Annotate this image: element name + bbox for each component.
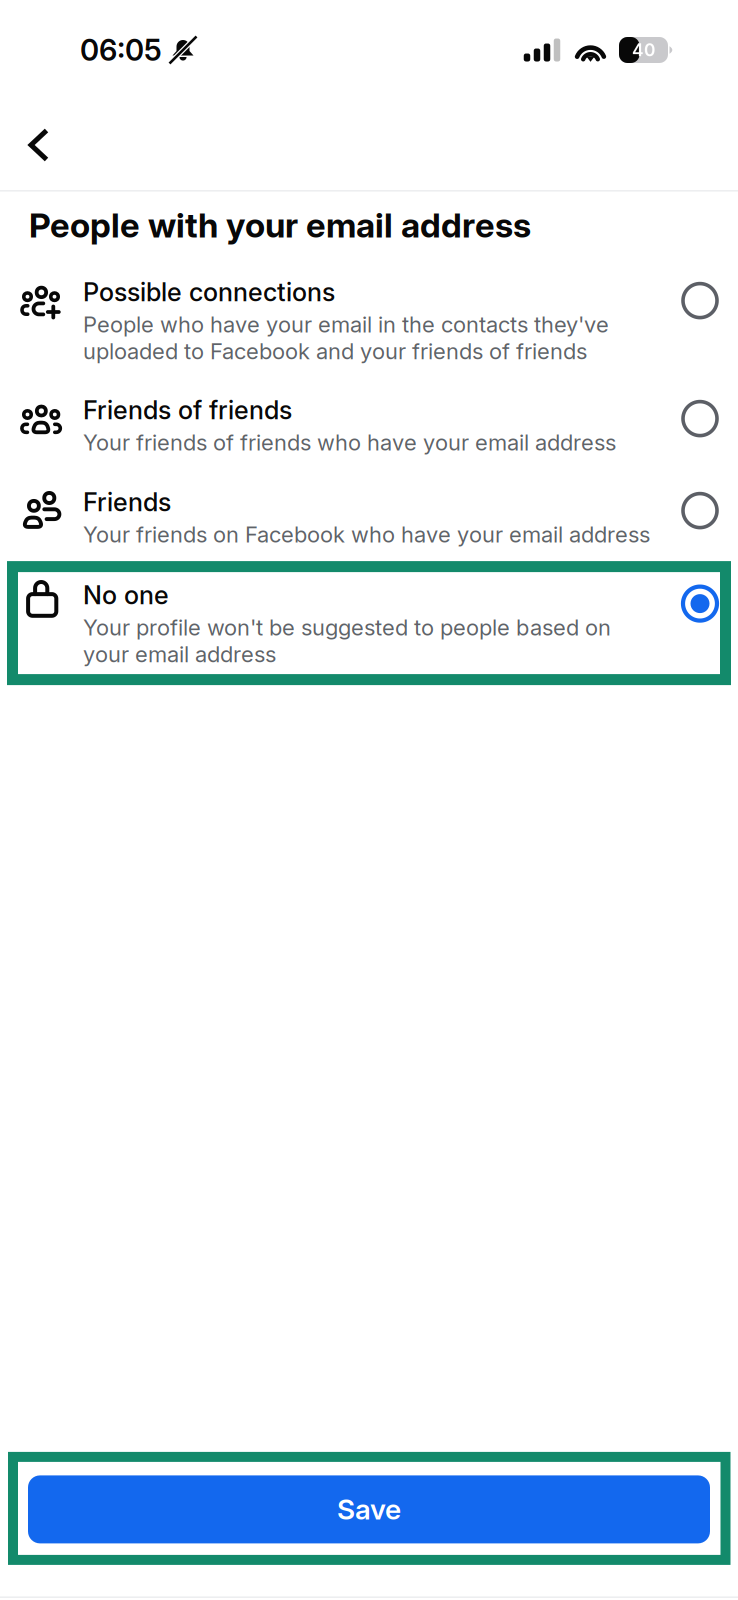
staticText: 40	[632, 39, 655, 60]
staticText: Save	[337, 1492, 401, 1526]
button[interactable]: Save	[28, 1475, 710, 1543]
button[interactable]: No one	[0, 562, 738, 684]
staticText: Friends	[83, 487, 171, 517]
staticText: Your profile won't be suggested to peopl…	[83, 614, 611, 667]
staticText: No one	[83, 580, 169, 610]
button[interactable]: Possible connections	[0, 259, 738, 377]
staticText: Possible connections	[83, 277, 335, 307]
staticText: Your friends on Facebook who have your e…	[83, 521, 650, 548]
button[interactable]: Friends	[0, 469, 738, 562]
staticText: People who have your email in the contac…	[83, 311, 609, 364]
staticText: 06:05	[80, 32, 162, 68]
staticText: Your friends of friends who have your em…	[83, 429, 616, 456]
staticText: People with your email address	[29, 204, 531, 246]
button[interactable]: Friends of friends	[0, 377, 738, 469]
staticText: Friends of friends	[83, 395, 292, 425]
button[interactable]: Back	[0, 100, 76, 190]
